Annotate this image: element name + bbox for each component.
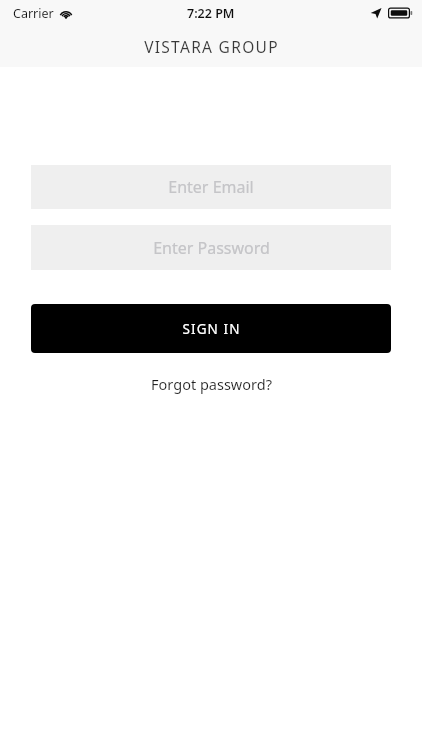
staticText: Carrier xyxy=(13,5,54,22)
button[interactable]: Forgot password? xyxy=(141,370,282,398)
staticText: Forgot password? xyxy=(151,374,272,394)
staticText: 7:22 PM xyxy=(187,5,235,22)
button[interactable]: Enter Email xyxy=(31,165,391,209)
staticText: Enter Email xyxy=(168,176,254,198)
other: Location active xyxy=(370,7,382,19)
staticText: SIGN IN xyxy=(182,320,241,338)
button[interactable]: SIGN IN xyxy=(31,304,391,353)
staticText: Enter Password xyxy=(153,237,270,259)
staticText: VISTARA GROUP xyxy=(144,36,279,57)
other: Battery full xyxy=(388,7,413,19)
button[interactable]: Enter Password xyxy=(31,225,391,270)
